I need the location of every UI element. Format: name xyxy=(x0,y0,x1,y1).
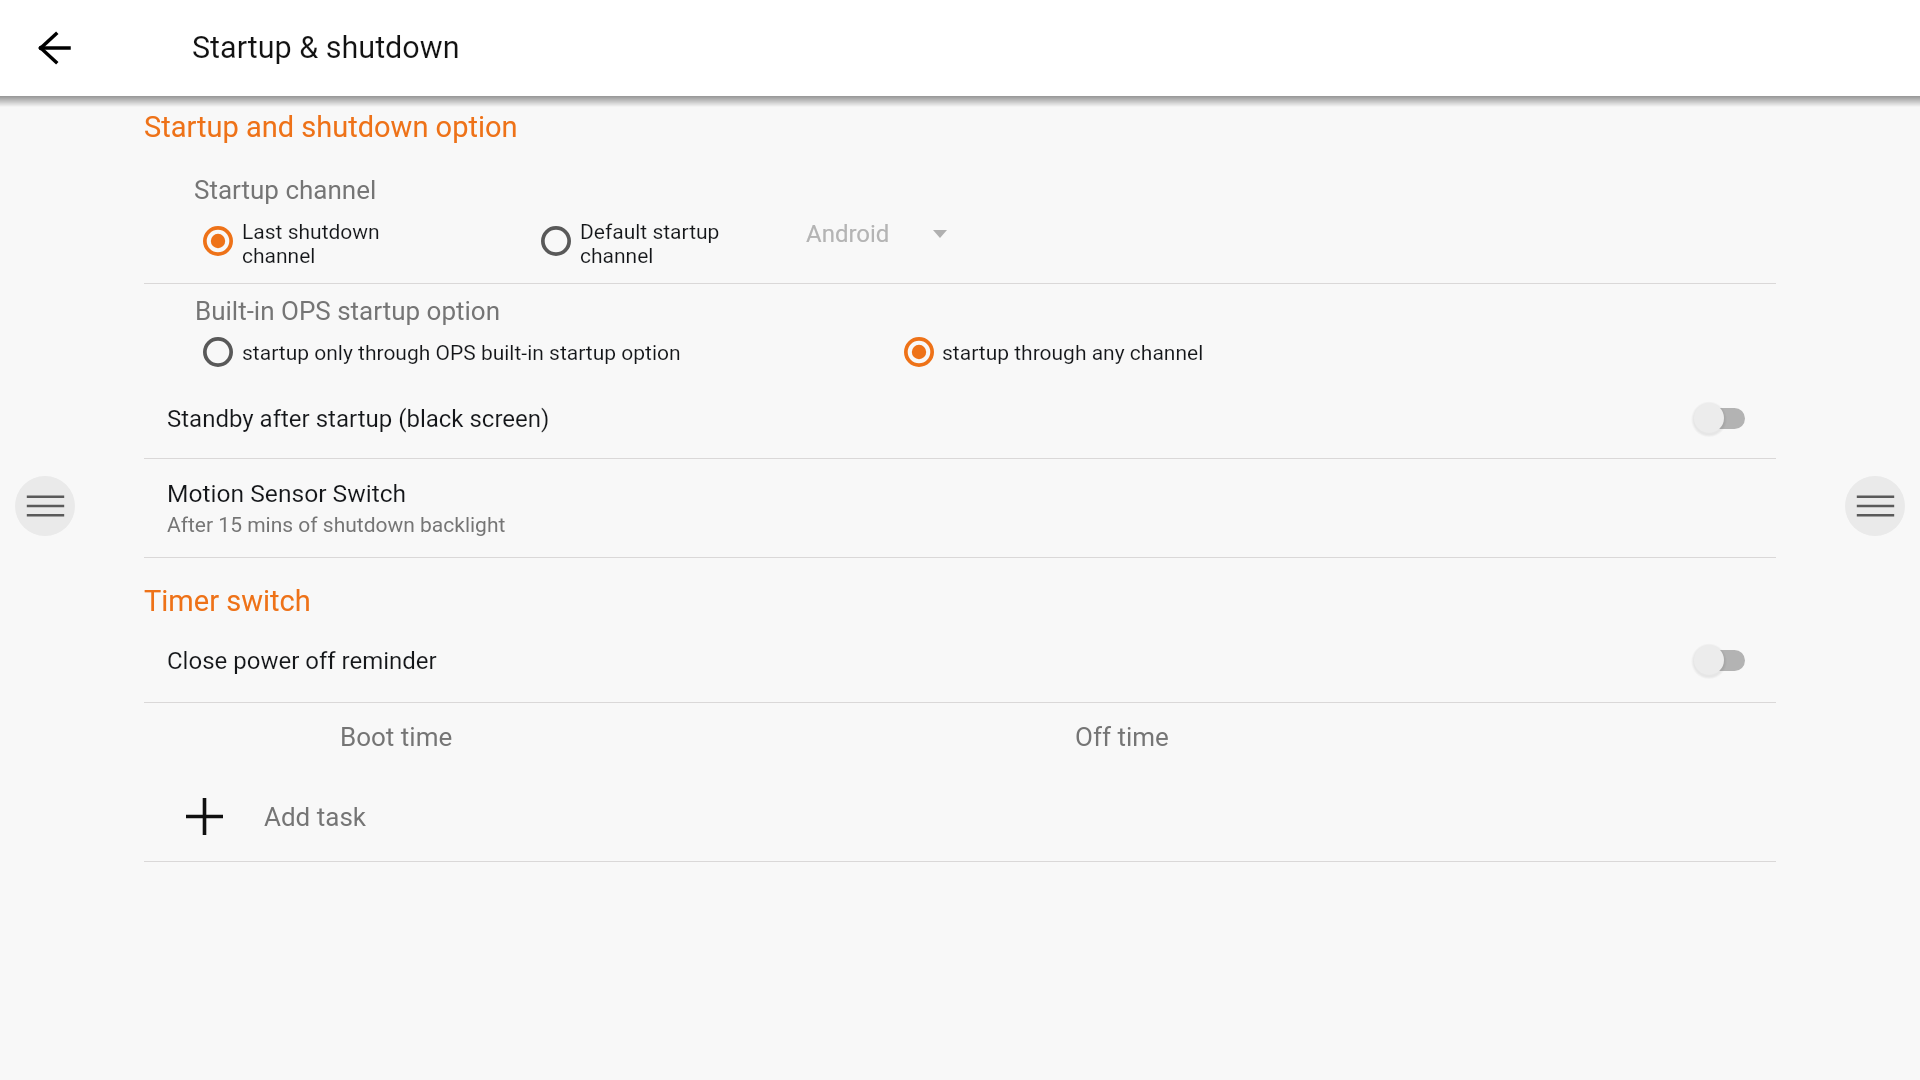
staticText: Motion Sensor Switch xyxy=(167,479,407,508)
staticText: Standby after startup (black screen) xyxy=(167,405,550,433)
staticText: Default startup xyxy=(580,220,720,245)
button[interactable]: Default startup channel xyxy=(532,217,580,265)
staticText: Boot time xyxy=(340,722,453,752)
staticText: Android xyxy=(806,220,890,248)
staticText: Startup channel xyxy=(194,175,377,205)
staticText: channel xyxy=(242,244,316,269)
button[interactable]: Add task xyxy=(0,775,1920,861)
staticText: Timer switch xyxy=(144,584,311,618)
button[interactable]: Menu xyxy=(15,476,75,536)
button[interactable]: Last shutdown channel xyxy=(194,217,242,265)
staticText: Last shutdown xyxy=(242,220,380,245)
button[interactable]: Close power off reminder xyxy=(0,629,1920,702)
staticText: channel xyxy=(580,244,654,269)
staticText: Startup & shutdown xyxy=(192,30,460,66)
button[interactable]: Select startup channel xyxy=(918,212,962,256)
staticText: Startup and shutdown option xyxy=(144,110,518,144)
staticText: After 15 mins of shutdown backlight xyxy=(167,513,506,538)
button[interactable]: Menu xyxy=(1845,476,1905,536)
button[interactable]: Standby after startup (black screen) xyxy=(0,383,1920,458)
staticText: Close power off reminder xyxy=(167,647,437,675)
button[interactable]: startup through any channel xyxy=(895,328,943,376)
button[interactable]: Back xyxy=(24,0,84,96)
staticText: Off time xyxy=(1075,722,1169,752)
staticText: startup through any channel xyxy=(942,341,1204,366)
staticText: Built-in OPS startup option xyxy=(195,296,501,326)
staticText: startup only through OPS built-in startu… xyxy=(242,341,681,366)
staticText: Add task xyxy=(264,802,366,832)
button[interactable]: Motion Sensor Switch xyxy=(0,459,1920,556)
button[interactable]: startup only through OPS built-in startu… xyxy=(194,328,242,376)
